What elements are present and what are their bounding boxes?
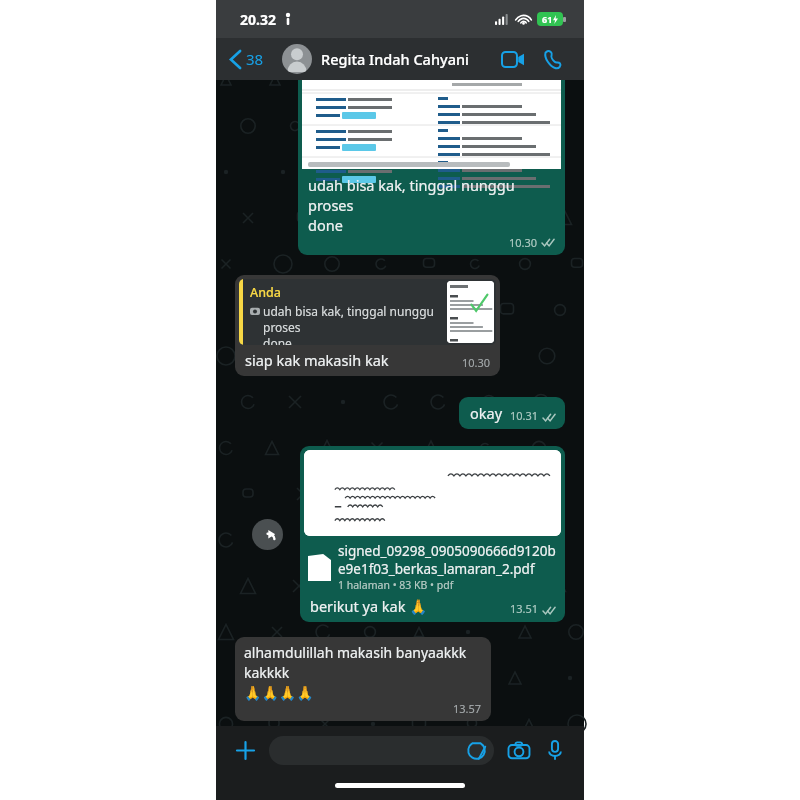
button[interactable]: alhamdulillah makasih banyaakkk kakkkk 🙏… <box>235 637 491 721</box>
staticText: 10.30 <box>462 355 491 370</box>
button[interactable]: Attach <box>230 735 260 765</box>
staticText: 13.57 <box>453 701 482 716</box>
staticText: Anda <box>250 284 281 301</box>
staticText: 20.32 <box>240 10 276 29</box>
staticText: okay <box>470 403 503 423</box>
button[interactable]: Anda <box>235 275 500 376</box>
staticText: siap kak makasih kak <box>245 350 389 370</box>
staticText: 10.31 <box>510 408 539 423</box>
button[interactable]: okay <box>459 397 565 429</box>
staticText: alhamdulillah makasih banyaakkk kakkkk 🙏… <box>244 643 482 701</box>
staticText: udah bisa kak, tinggal nunggu proses don… <box>263 303 441 345</box>
staticText: 1 halaman • 83 KB • pdf <box>338 578 454 592</box>
button[interactable]: Sticker <box>467 741 486 760</box>
button[interactable]: Camera <box>504 735 534 765</box>
button[interactable]: Voice message <box>540 735 570 765</box>
button[interactable]: Forward <box>252 519 283 550</box>
staticText: berikut ya kak 🙏 <box>310 596 428 616</box>
button[interactable]: Back <box>226 45 268 73</box>
button[interactable]: Voice call <box>536 42 570 76</box>
staticText: 61 <box>542 13 553 25</box>
button[interactable]: udah bisa kak, tinggal nunggu proses don… <box>298 80 565 255</box>
staticText: signed_09298_0905090666d9120b e9e1f03_be… <box>338 542 556 578</box>
staticText: udah bisa kak, tinggal nunggu proses don… <box>308 175 555 235</box>
button[interactable]: Sticker <box>269 736 494 765</box>
staticText: 38 <box>246 49 264 69</box>
staticText: 10.30 <box>509 235 538 250</box>
staticText: Regita Indah Cahyani <box>321 49 469 69</box>
other: Back <box>230 50 241 69</box>
staticText: 13.51 <box>510 601 539 616</box>
button[interactable]: Video call <box>496 42 530 76</box>
button[interactable]: Regita Indah Cahyani <box>282 44 469 74</box>
button[interactable]: signed_09298_0905090666d9120b e9e1f03_be… <box>300 446 565 622</box>
